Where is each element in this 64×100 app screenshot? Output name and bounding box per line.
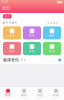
button[interactable]: 服务 <box>16 89 32 97</box>
staticText: ●●▮ <box>57 0 62 3</box>
staticText: 常用服务 <box>6 21 18 24</box>
staticText: 首页 <box>5 93 11 97</box>
staticText: 健康资讯 <box>3 57 19 62</box>
staticText: 推荐 <box>4 15 10 18</box>
button[interactable]: 消息 <box>32 89 48 97</box>
staticText: 消息 <box>37 93 43 97</box>
staticText: 药品 <box>49 49 55 53</box>
button[interactable]: 缴费 <box>43 26 61 39</box>
staticText: 缴费 <box>49 34 55 37</box>
button[interactable]: 药品 <box>43 42 61 55</box>
staticText: 体检 <box>29 49 35 53</box>
staticText: 更多 <box>20 58 26 61</box>
staticText: 服务 <box>21 93 27 97</box>
button[interactable]: 首页 <box>0 89 16 97</box>
button[interactable]: 常用服务 <box>0 18 64 24</box>
staticText: 问诊 <box>9 49 15 53</box>
staticText: 全部服务 › <box>47 21 61 24</box>
staticText: 报告 <box>29 34 35 37</box>
staticText: 首页 <box>2 6 10 11</box>
staticText: 挂号 <box>9 34 15 37</box>
button[interactable]: 报告 <box>23 26 41 39</box>
button[interactable]: 推荐 <box>3 14 11 18</box>
button[interactable]: 问诊 <box>3 42 21 55</box>
button[interactable]: 挂号 <box>3 26 21 39</box>
staticText: 我的 <box>53 93 59 97</box>
staticText: 9:41 <box>2 0 9 4</box>
button[interactable]: More news <box>58 59 61 61</box>
button[interactable]: 体检 <box>23 42 41 55</box>
button[interactable]: 我的 <box>48 89 64 97</box>
